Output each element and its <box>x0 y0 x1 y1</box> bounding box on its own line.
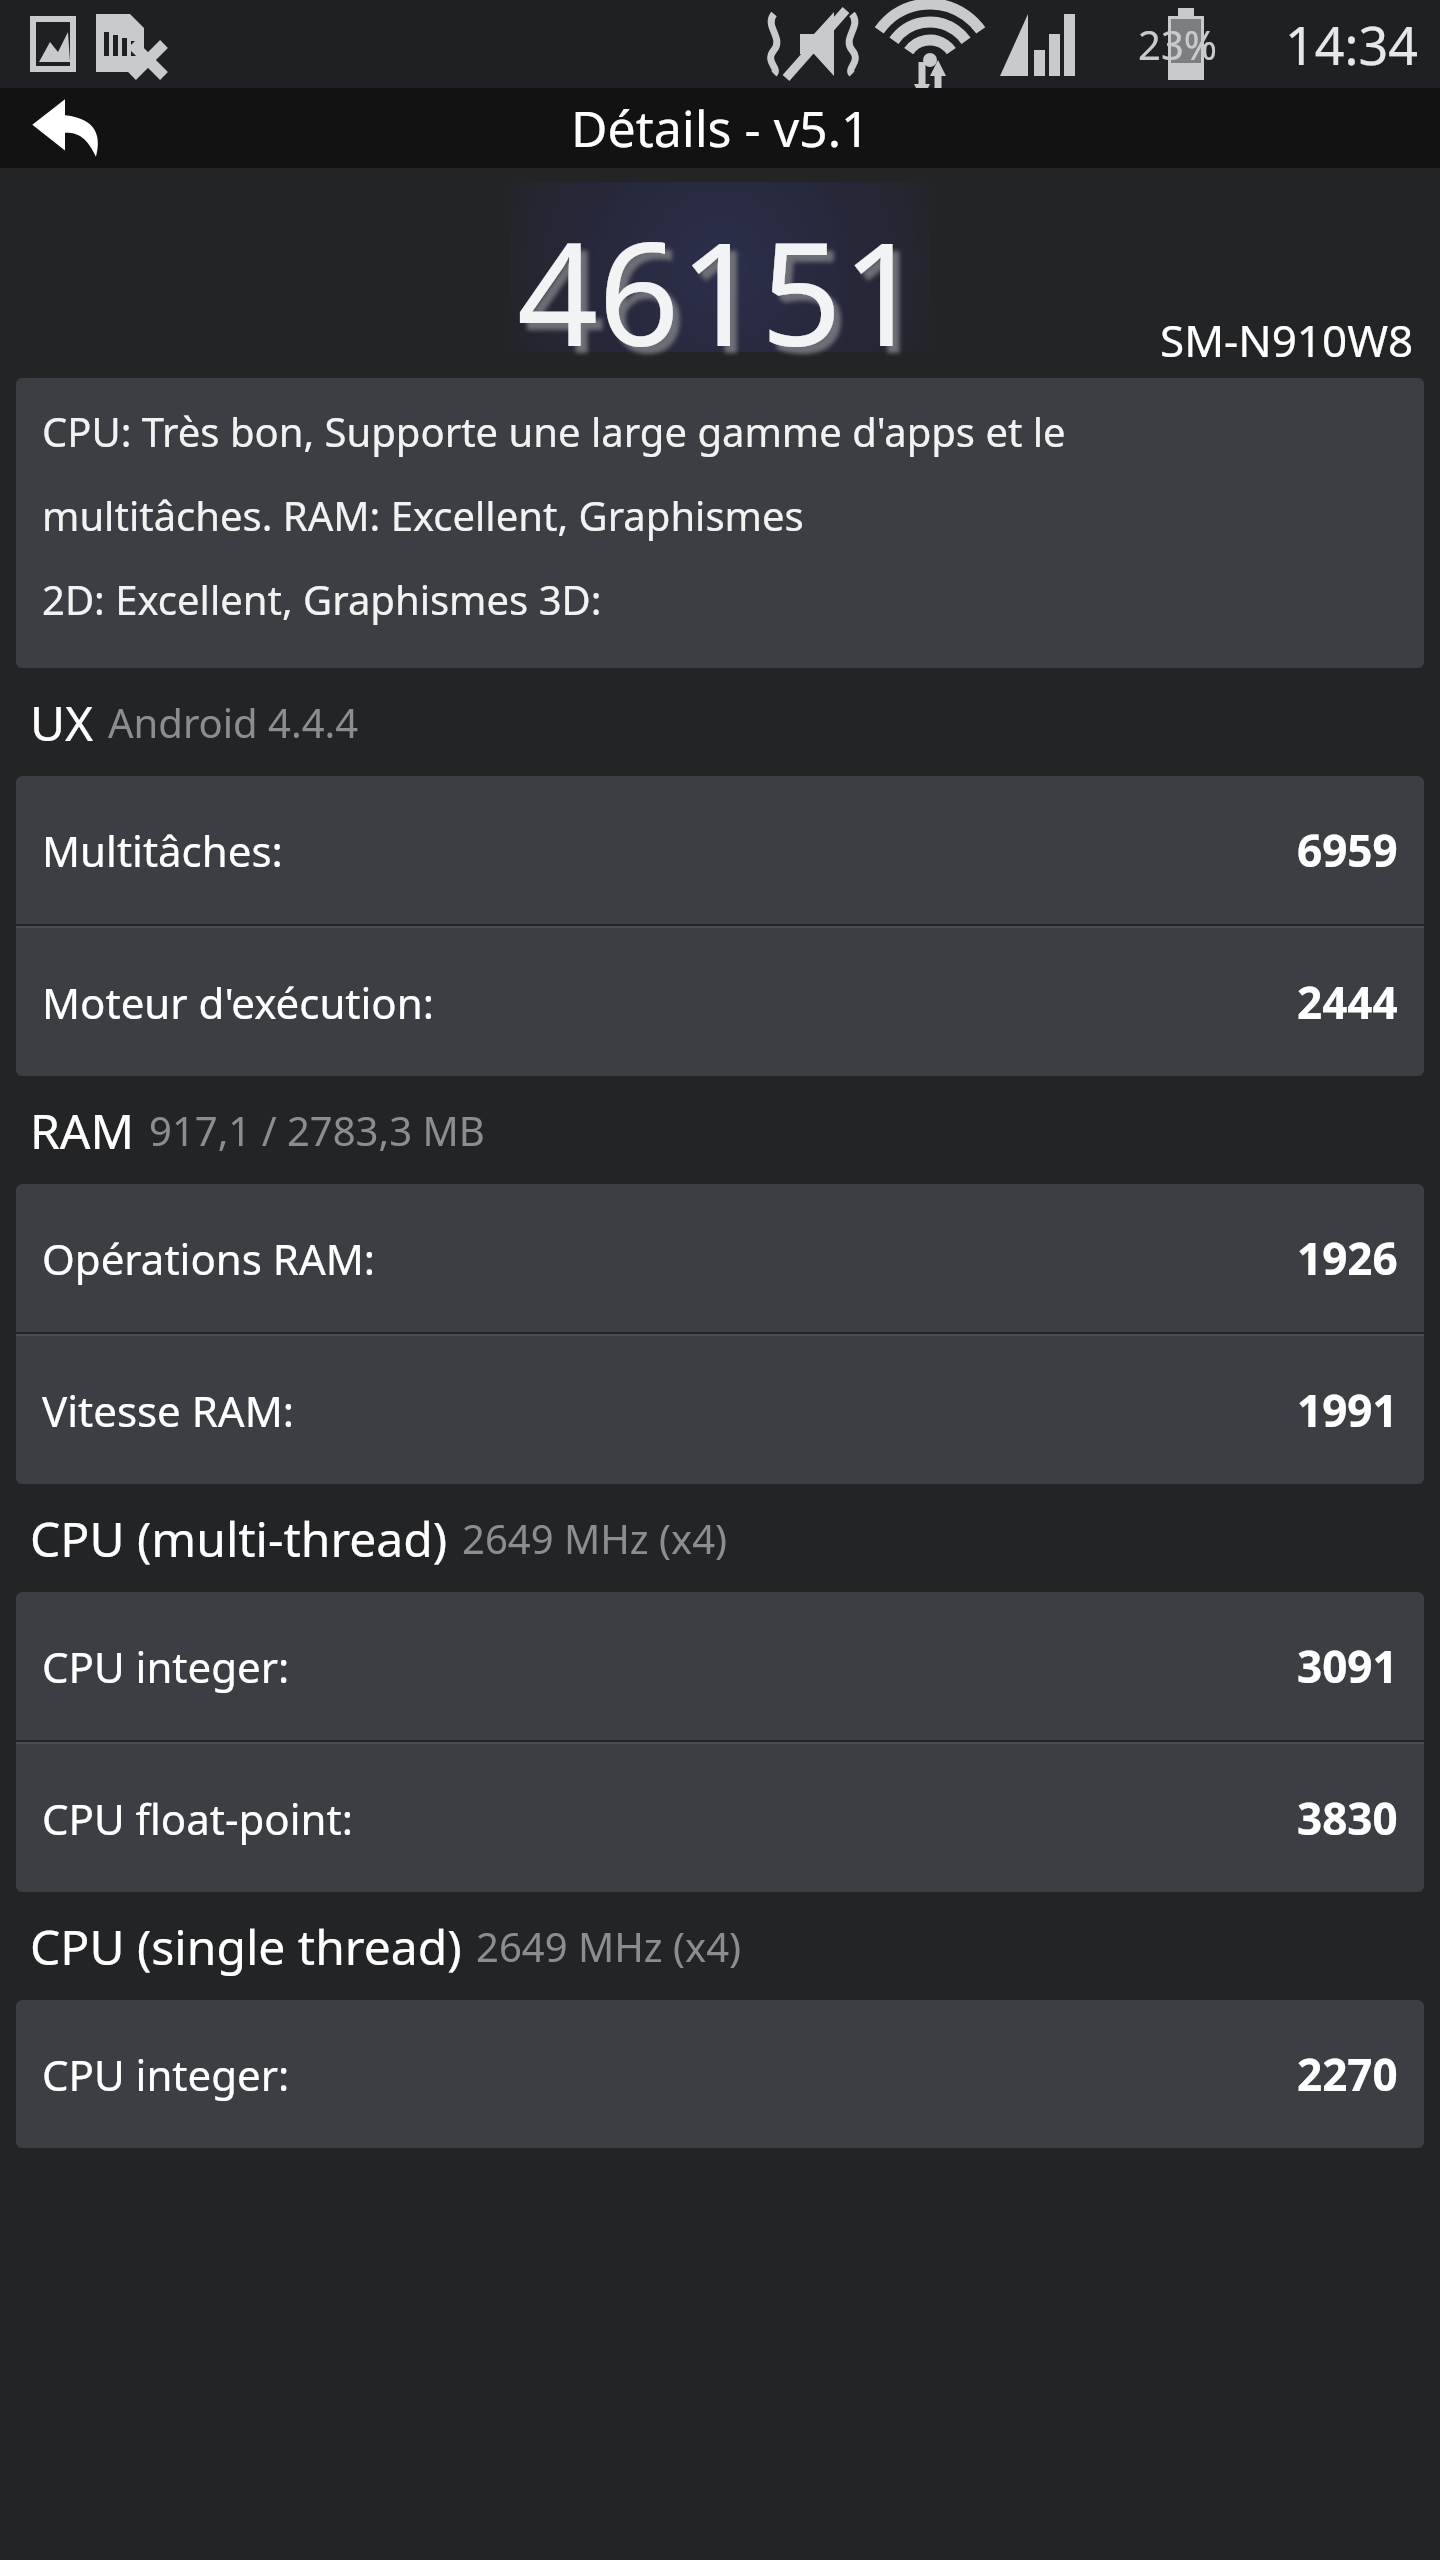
staticText: Détails - v5.1 <box>571 94 870 162</box>
staticText: 917,1 / 2783,3 MB <box>149 1103 485 1157</box>
staticText: 46151 <box>517 194 924 378</box>
staticText: CPU (single thread) <box>30 1914 462 1979</box>
staticText: CPU (multi-thread) <box>30 1506 448 1571</box>
staticText: 1991 <box>1297 1380 1398 1440</box>
staticText: UX <box>30 690 94 755</box>
staticText: multitâches. RAM: Excellent, Graphismes <box>42 488 804 542</box>
staticText: Opérations RAM: <box>42 1230 376 1287</box>
staticText: Vitesse RAM: <box>42 1382 295 1439</box>
staticText: RAM <box>30 1098 135 1163</box>
staticText: 14:34 <box>1285 9 1418 80</box>
staticText: 1926 <box>1297 1228 1398 1288</box>
staticText: CPU float-point: <box>42 1790 353 1847</box>
staticText: CPU integer: <box>42 2046 290 2103</box>
staticText: 6959 <box>1297 820 1398 880</box>
button[interactable]: CPU integer: <box>16 2000 1424 2148</box>
staticText: 23% <box>1138 17 1217 71</box>
staticText: 2649 MHz (x4) <box>476 1919 742 1973</box>
staticText: Moteur d'exécution: <box>42 974 434 1031</box>
staticText: 3830 <box>1297 1788 1398 1848</box>
button[interactable]: CPU: Très bon, Supporte une large gamme … <box>16 378 1424 668</box>
staticText: Android 4.4.4 <box>108 695 359 749</box>
staticText: 2D: Excellent, Graphismes 3D: <box>42 572 602 626</box>
button[interactable]: Multitâches: <box>16 776 1424 924</box>
button[interactable]: Vitesse RAM: <box>16 1336 1424 1484</box>
button[interactable]: Moteur d'exécution: <box>16 928 1424 1076</box>
staticText: SM-N910W8 <box>1160 310 1414 370</box>
staticText: Multitâches: <box>42 822 283 879</box>
staticText: CPU integer: <box>42 1638 290 1695</box>
button[interactable]: Opérations RAM: <box>16 1184 1424 1332</box>
staticText: 2270 <box>1297 2044 1398 2104</box>
staticText: 2444 <box>1297 972 1398 1032</box>
staticText: CPU: Très bon, Supporte une large gamme … <box>42 404 1066 458</box>
button[interactable]: CPU float-point: <box>16 1744 1424 1892</box>
staticText: 2649 MHz (x4) <box>462 1511 728 1565</box>
button[interactable]: CPU integer: <box>16 1592 1424 1740</box>
button[interactable]: Back <box>22 88 108 168</box>
staticText: 3091 <box>1297 1636 1398 1696</box>
